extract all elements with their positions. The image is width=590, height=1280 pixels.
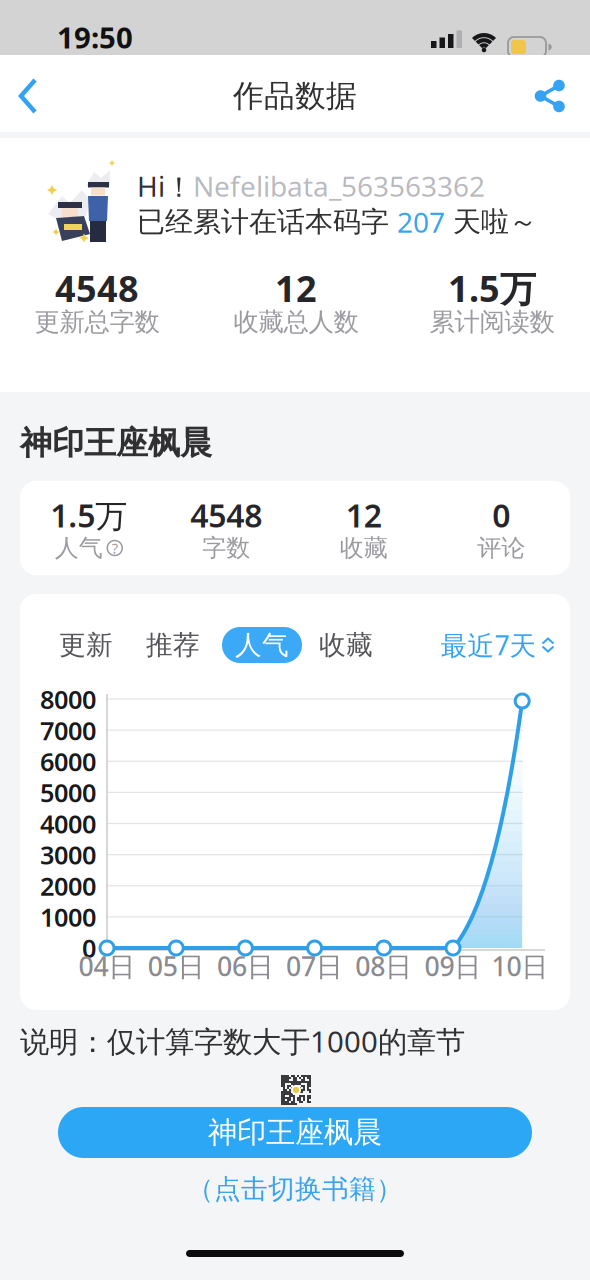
staticText: 07日 bbox=[286, 948, 343, 984]
staticText: 收藏 bbox=[319, 629, 373, 661]
staticText: （点击切换书籍） bbox=[187, 1173, 403, 1205]
button[interactable]: 收藏 bbox=[319, 629, 373, 661]
staticText: 说明：仅计算字数大于1000的章节 bbox=[20, 1021, 465, 1060]
staticText: 08日 bbox=[355, 948, 412, 984]
staticText: Hi！ bbox=[137, 167, 193, 205]
staticText: 收藏总人数 bbox=[233, 306, 358, 337]
staticText: 05日 bbox=[148, 948, 205, 984]
staticText: 12 bbox=[346, 494, 382, 536]
staticText: 作品数据 bbox=[233, 77, 357, 115]
staticText: 最近7天 bbox=[440, 627, 536, 663]
staticText: 0 bbox=[82, 931, 96, 965]
staticText: 1.5万 bbox=[50, 494, 127, 536]
button[interactable]: 人气说明 bbox=[107, 540, 123, 556]
staticText: 2000 bbox=[40, 869, 96, 903]
staticText: 累计阅读数 bbox=[429, 306, 554, 337]
staticText: 1000 bbox=[40, 900, 96, 934]
button[interactable]: （点击切换书籍） bbox=[187, 1173, 403, 1205]
staticText: 6000 bbox=[40, 745, 96, 778]
staticText: 推荐 bbox=[146, 629, 200, 661]
staticText: 12 bbox=[275, 264, 317, 312]
staticText: 06日 bbox=[217, 948, 274, 984]
staticText: ? bbox=[112, 538, 118, 558]
staticText: 19:50 bbox=[57, 17, 133, 56]
button[interactable]: Share bbox=[534, 80, 566, 112]
staticText: 3000 bbox=[40, 838, 96, 871]
staticText: 神印王座枫晨 bbox=[20, 423, 212, 463]
button[interactable]: 人气 bbox=[222, 627, 302, 663]
button[interactable]: 最近7天 bbox=[440, 627, 553, 663]
staticText: 人气 bbox=[235, 629, 289, 661]
staticText: 10日 bbox=[491, 948, 548, 984]
staticText: 09日 bbox=[424, 948, 481, 984]
staticText: 字数 bbox=[202, 533, 250, 563]
staticText: 评论 bbox=[477, 533, 525, 563]
staticText: 0 bbox=[492, 494, 510, 536]
button[interactable]: 更新 bbox=[59, 629, 113, 661]
staticText: 收藏 bbox=[340, 533, 388, 563]
staticText: Nefelibata_563563362 bbox=[193, 167, 485, 205]
staticText: 4548 bbox=[190, 494, 262, 536]
staticText: 7000 bbox=[40, 713, 96, 747]
staticText: 人气 bbox=[55, 533, 103, 563]
staticText: 1.5万 bbox=[448, 264, 536, 312]
button[interactable]: Back bbox=[17, 80, 49, 112]
staticText: 已经累计在话本码字 bbox=[137, 205, 397, 239]
staticText: 4000 bbox=[40, 807, 96, 840]
staticText: 8000 bbox=[40, 682, 96, 716]
staticText: 5000 bbox=[40, 776, 96, 809]
button[interactable]: 推荐 bbox=[146, 629, 200, 661]
staticText: 207 bbox=[397, 203, 445, 241]
staticText: 神印王座枫晨 bbox=[208, 1114, 382, 1150]
staticText: 更新 bbox=[59, 629, 113, 661]
staticText: 天啦～ bbox=[445, 205, 537, 239]
staticText: 04日 bbox=[78, 948, 135, 984]
button[interactable]: 神印王座枫晨 bbox=[58, 1107, 532, 1158]
staticText: 更新总字数 bbox=[34, 306, 159, 337]
staticText: 4548 bbox=[55, 264, 139, 312]
